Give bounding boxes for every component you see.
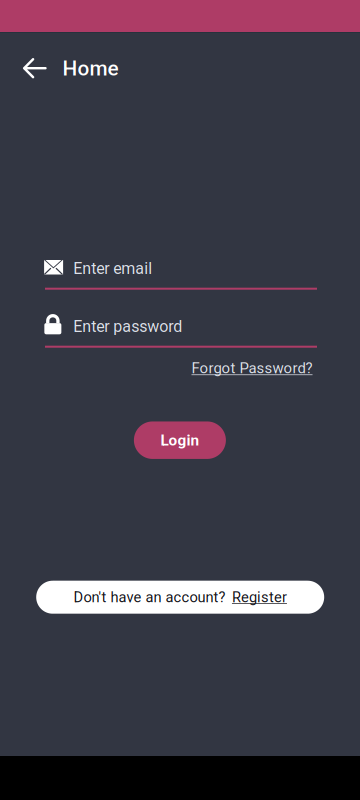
staticText: Forgot Password? bbox=[191, 359, 312, 377]
staticText: Home bbox=[62, 56, 118, 80]
staticText: Enter email bbox=[73, 259, 152, 278]
button[interactable]: Enter email bbox=[45, 254, 317, 294]
button[interactable]: Back bbox=[12, 44, 58, 92]
button[interactable]: Don't have an account? bbox=[36, 581, 324, 614]
button[interactable]: Enter password bbox=[45, 312, 317, 352]
staticText: Don't have an account? bbox=[73, 589, 225, 606]
button[interactable]: Forgot Password? bbox=[188, 357, 312, 379]
staticText: Register bbox=[232, 589, 287, 606]
staticText: Login bbox=[160, 431, 199, 449]
staticText: Enter password bbox=[73, 317, 182, 336]
button[interactable]: Login bbox=[134, 421, 226, 459]
